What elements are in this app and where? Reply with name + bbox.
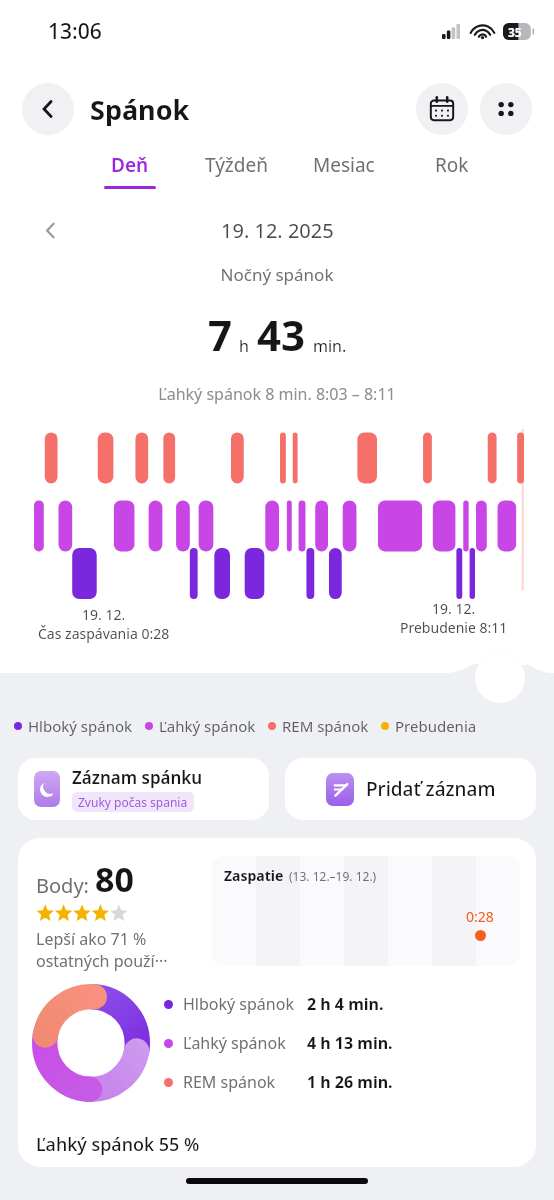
staticText: Body: bbox=[36, 872, 95, 899]
staticText: Lepší ako 71 % bbox=[36, 928, 147, 950]
staticText: 43 bbox=[257, 306, 306, 363]
staticText: 7 bbox=[208, 306, 233, 363]
staticText: Zvuky počas spania bbox=[78, 794, 188, 810]
button[interactable]: Mesiac bbox=[290, 152, 398, 186]
staticText: Ľahký spánok 55 % bbox=[36, 1132, 200, 1157]
staticText: Ľahký spánok bbox=[183, 1032, 286, 1054]
staticText: 19. 12. bbox=[432, 599, 476, 618]
staticText: 19. 12. 2025 bbox=[221, 217, 334, 244]
staticText: Spánok bbox=[90, 91, 190, 128]
staticText: Týždeň bbox=[205, 152, 268, 178]
staticText: 2 h 4 min. bbox=[307, 993, 384, 1015]
staticText: 13:06 bbox=[48, 17, 102, 46]
staticText: Prebudenia bbox=[395, 716, 477, 736]
staticText: 19. 12. bbox=[82, 605, 126, 624]
button[interactable]: Záznam spánku bbox=[18, 758, 269, 820]
staticText: Mesiac bbox=[313, 152, 375, 178]
button[interactable]: Pridať záznam bbox=[285, 758, 536, 820]
button[interactable]: Deň bbox=[76, 152, 183, 189]
staticText: 35 bbox=[508, 24, 522, 40]
button[interactable]: Previous day bbox=[34, 214, 66, 246]
button[interactable]: Rok bbox=[398, 152, 506, 186]
staticText: min. bbox=[313, 335, 347, 357]
staticText: Pridať záznam bbox=[366, 776, 496, 802]
staticText: Hlboký spánok bbox=[183, 993, 294, 1015]
staticText: REM spánok bbox=[282, 716, 369, 736]
button[interactable]: Back bbox=[22, 83, 74, 135]
staticText: Nočný spánok bbox=[0, 263, 554, 286]
staticText: Hlboký spánok bbox=[28, 716, 133, 736]
staticText: Prebudenie 8:11 bbox=[400, 618, 508, 637]
staticText: Ľahký spánok bbox=[159, 716, 256, 736]
staticText: Rok bbox=[435, 152, 469, 178]
button[interactable]: Týždeň bbox=[183, 152, 290, 186]
button[interactable]: More options bbox=[480, 83, 532, 135]
staticText: Deň bbox=[111, 152, 149, 178]
staticText: 80 bbox=[95, 856, 134, 902]
staticText: Záznam spánku bbox=[72, 766, 203, 789]
button[interactable]: Body: bbox=[18, 838, 536, 1167]
staticText: Ľahký spánok 8 min. 8:03 – 8:11 bbox=[0, 383, 554, 405]
staticText: h bbox=[239, 335, 249, 357]
staticText: 1 h 26 min. bbox=[307, 1071, 393, 1093]
staticText: Zaspatie bbox=[224, 866, 284, 885]
staticText: 4 h 13 min. bbox=[307, 1032, 393, 1054]
staticText: Čas zaspávania 0:28 bbox=[38, 624, 170, 643]
button[interactable]: Calendar bbox=[416, 83, 468, 135]
staticText: (13. 12.–19. 12.) bbox=[289, 868, 377, 884]
staticText: REM spánok bbox=[183, 1071, 276, 1093]
staticText: 0:28 bbox=[466, 907, 494, 926]
staticText: ostatných použí··· bbox=[36, 950, 168, 972]
